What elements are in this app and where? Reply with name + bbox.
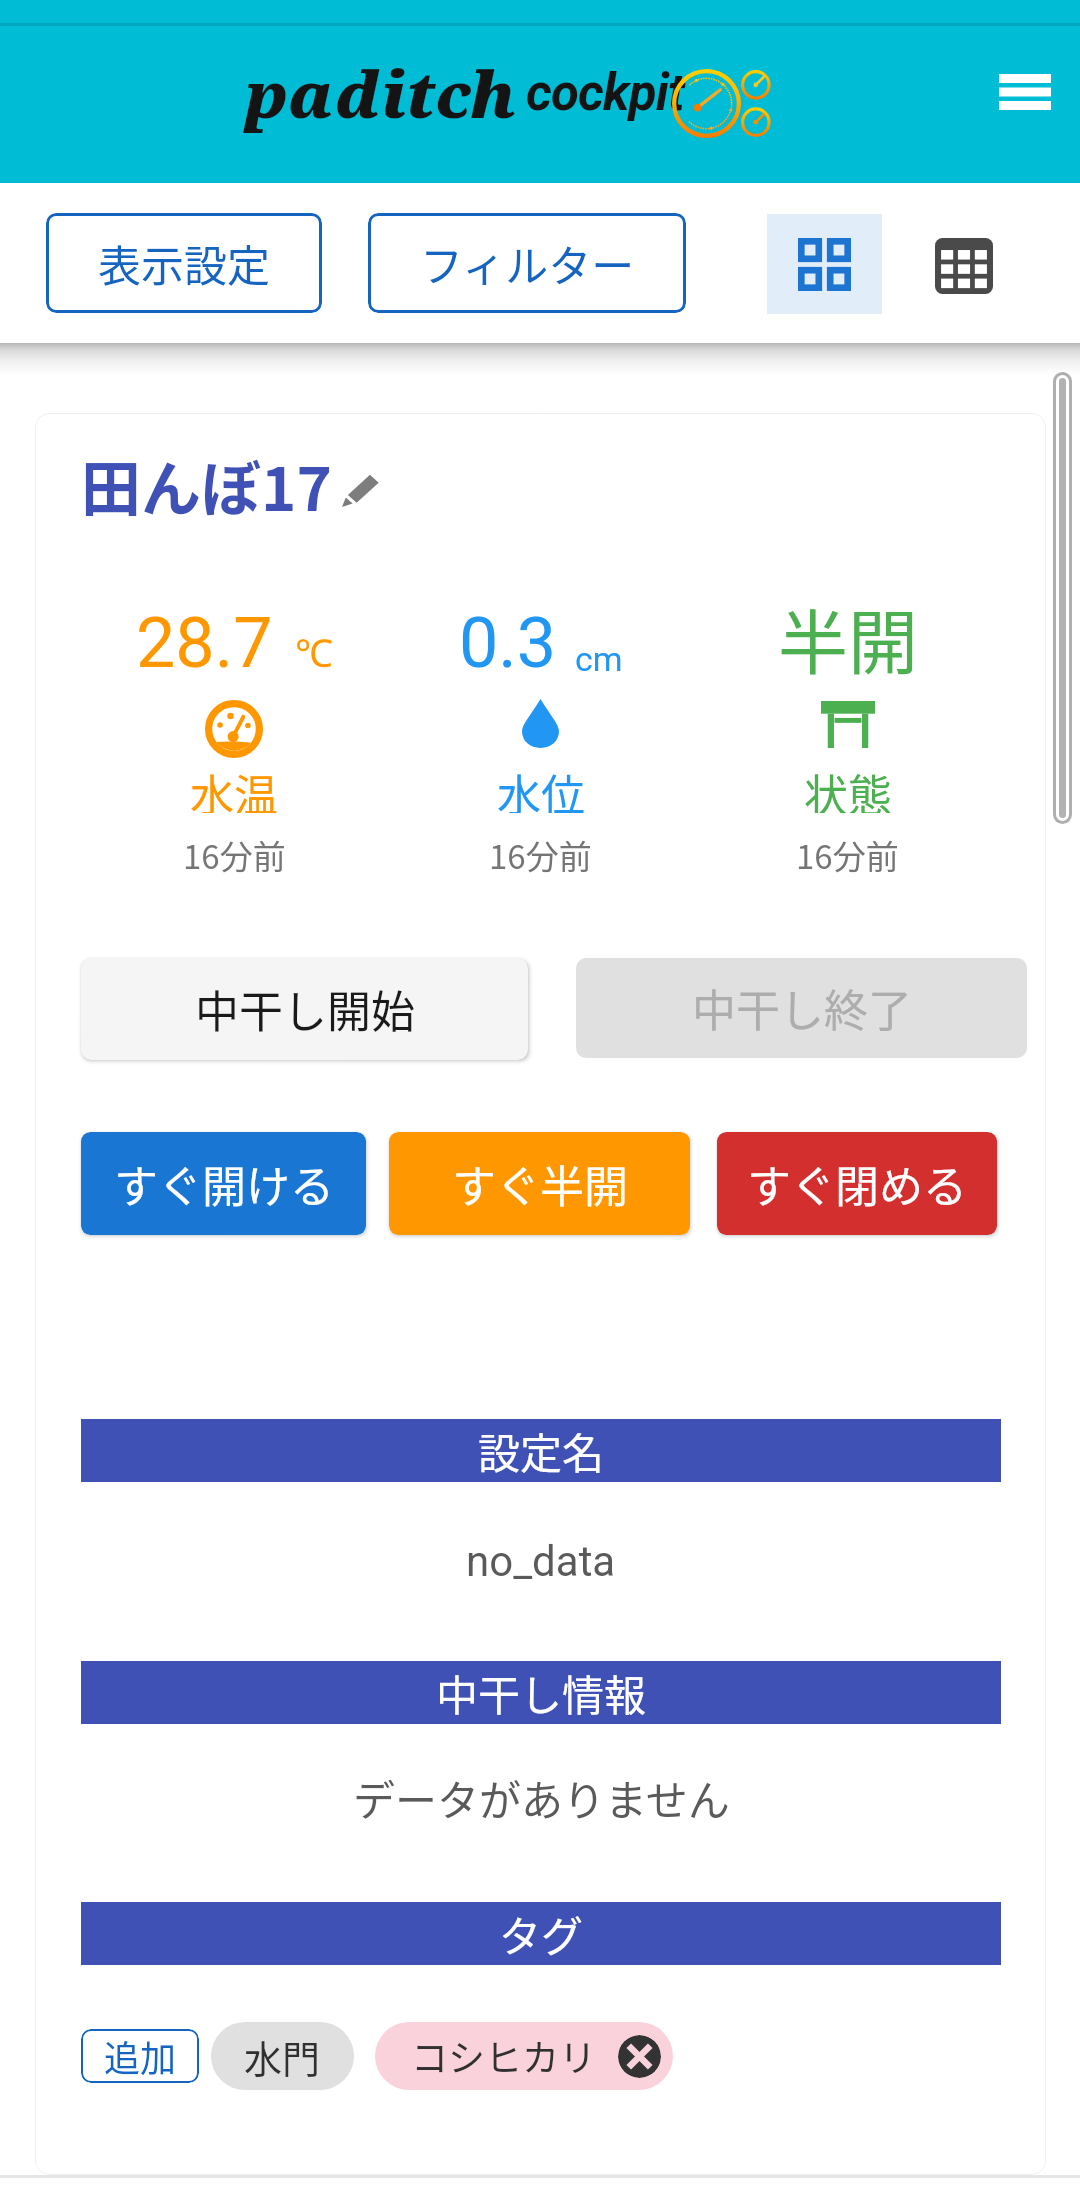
- staticText: コシヒカリ: [411, 2029, 596, 2083]
- staticText: すぐ開ける: [114, 1152, 334, 1216]
- staticText: すぐ半開: [452, 1152, 628, 1216]
- button[interactable]: 追加: [81, 2029, 199, 2083]
- staticText: 16分前: [796, 831, 899, 875]
- staticText: 16分前: [489, 831, 592, 875]
- staticText: 水温: [190, 761, 278, 813]
- button[interactable]: Menu: [982, 49, 1068, 135]
- staticText: no_data: [466, 1537, 616, 1586]
- staticText: 水位: [497, 761, 585, 813]
- button[interactable]: Grid view: [767, 214, 882, 314]
- staticText: タグ: [499, 1903, 584, 1964]
- button[interactable]: 中干し情報: [81, 1661, 1001, 1724]
- button[interactable]: 中干し開始: [81, 958, 528, 1060]
- button[interactable]: すぐ半開: [389, 1132, 690, 1235]
- button[interactable]: タグ: [81, 1902, 1001, 1965]
- staticText: 田んぼ17: [81, 441, 332, 528]
- button[interactable]: すぐ開ける: [81, 1132, 366, 1235]
- staticText: 設定名: [478, 1420, 605, 1481]
- staticText: フィルター: [420, 232, 635, 294]
- button[interactable]: フィルター: [368, 213, 686, 313]
- staticText: データがありません: [353, 1767, 730, 1828]
- staticText: 状態: [804, 761, 892, 813]
- staticText: cockpit: [526, 63, 684, 123]
- button[interactable]: Edit name: [334, 463, 388, 517]
- staticText: 半開: [778, 588, 918, 678]
- staticText: ℃: [295, 626, 333, 678]
- button[interactable]: すぐ閉める: [717, 1132, 997, 1235]
- staticText: cm: [575, 639, 623, 679]
- staticText: 16分前: [183, 831, 286, 875]
- button[interactable]: 中干し終了: [576, 958, 1027, 1058]
- staticText: 中干し終了: [692, 976, 912, 1040]
- button[interactable]: 水門: [211, 2022, 354, 2090]
- button[interactable]: 設定名: [81, 1419, 1001, 1482]
- button[interactable]: 表示設定: [46, 213, 322, 313]
- staticText: 水門: [244, 2029, 321, 2084]
- button[interactable]: コシヒカリ: [375, 2022, 673, 2090]
- staticText: paditch: [246, 50, 516, 137]
- staticText: 表示設定: [98, 232, 270, 294]
- button[interactable]: Remove tag コシヒカリ: [618, 2035, 661, 2078]
- staticText: 中干し情報: [436, 1662, 647, 1723]
- staticText: 中干し開始: [195, 977, 415, 1041]
- staticText: 追加: [104, 2030, 177, 2082]
- staticText: 0.3: [459, 602, 557, 684]
- staticText: 28.7: [136, 602, 273, 684]
- staticText: すぐ閉める: [747, 1152, 967, 1216]
- button[interactable]: Table view: [906, 208, 1022, 324]
